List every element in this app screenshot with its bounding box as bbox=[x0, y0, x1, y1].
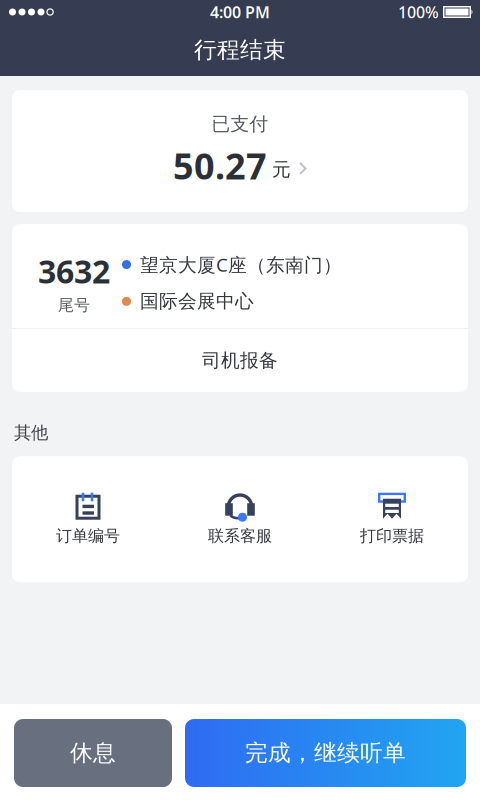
staticText: 3632 bbox=[38, 250, 110, 292]
button[interactable]: 休息 bbox=[14, 719, 172, 787]
staticText: 4:00 PM bbox=[210, 1, 270, 23]
staticText: 尾号 bbox=[58, 295, 90, 315]
staticText: 望京大厦C座（东南门） bbox=[140, 252, 342, 277]
button[interactable]: 司机报备 bbox=[12, 329, 468, 392]
button[interactable]: 订单编号 bbox=[12, 493, 164, 546]
button[interactable]: 联系客服 bbox=[164, 493, 316, 546]
staticText: 其他 bbox=[14, 422, 48, 443]
staticText: 50.27 bbox=[173, 142, 267, 189]
button[interactable]: 完成，继续听单 bbox=[185, 719, 466, 787]
staticText: 100% bbox=[398, 1, 439, 23]
staticText: 联系客服 bbox=[208, 526, 272, 546]
staticText: 已支付 bbox=[211, 113, 268, 135]
staticText: 元 bbox=[272, 158, 291, 181]
staticText: 司机报备 bbox=[202, 349, 278, 372]
staticText: 完成，继续听单 bbox=[245, 739, 406, 767]
staticText: 国际会展中心 bbox=[140, 290, 254, 313]
staticText: 行程结束 bbox=[194, 36, 286, 64]
staticText: 休息 bbox=[70, 739, 116, 767]
button[interactable]: 打印票据 bbox=[316, 493, 468, 546]
button[interactable]: 已支付 bbox=[12, 90, 468, 212]
staticText: 订单编号 bbox=[56, 526, 120, 546]
staticText: 打印票据 bbox=[360, 526, 424, 546]
